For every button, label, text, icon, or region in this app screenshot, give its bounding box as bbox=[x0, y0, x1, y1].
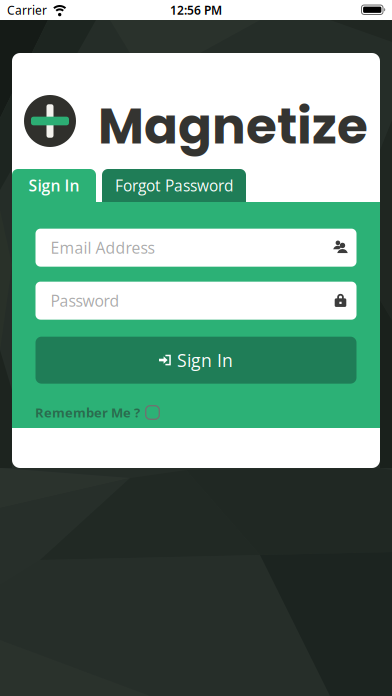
button[interactable]: Email Address bbox=[35, 229, 356, 267]
staticText: Remember Me ? bbox=[35, 404, 140, 421]
staticText: Sign In bbox=[177, 348, 233, 372]
button[interactable]: Sign In bbox=[35, 337, 356, 384]
staticText: Forgot Password bbox=[115, 175, 233, 196]
staticText: Magnetize bbox=[98, 91, 368, 161]
staticText: Sign In bbox=[28, 175, 79, 196]
button[interactable]: Remember Me bbox=[145, 405, 160, 420]
button[interactable]: Forgot Password bbox=[102, 169, 246, 202]
button[interactable]: Password bbox=[35, 282, 356, 320]
staticText: 12:56 PM bbox=[170, 2, 222, 18]
staticText: Password bbox=[50, 290, 119, 311]
staticText: Carrier bbox=[7, 2, 47, 18]
staticText: Email Address bbox=[50, 237, 154, 258]
button[interactable]: Sign In bbox=[12, 169, 96, 202]
